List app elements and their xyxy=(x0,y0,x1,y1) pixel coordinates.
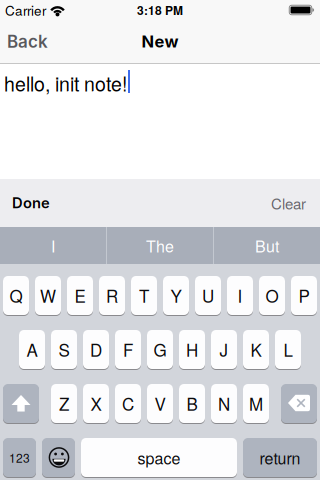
staticText: 123 xyxy=(9,449,30,466)
button[interactable]: Emoji xyxy=(42,438,75,477)
staticText: hello, init note! xyxy=(4,69,127,97)
button[interactable]: M xyxy=(243,384,269,423)
staticText: Carrier xyxy=(5,0,46,20)
button[interactable]: Z xyxy=(51,384,77,423)
staticText: R xyxy=(106,283,118,308)
button[interactable]: G xyxy=(147,330,173,369)
staticText: L xyxy=(283,337,292,362)
button[interactable]: Shift xyxy=(3,384,39,423)
staticText: New xyxy=(141,31,178,51)
staticText: I xyxy=(237,283,242,308)
button[interactable]: X xyxy=(83,384,109,423)
staticText: D xyxy=(90,337,102,362)
staticText: H xyxy=(186,337,198,362)
staticText: return xyxy=(259,446,300,469)
staticText: Q xyxy=(9,283,22,308)
button[interactable]: 123 xyxy=(3,438,36,477)
button[interactable]: P xyxy=(291,276,317,315)
button[interactable]: H xyxy=(179,330,205,369)
staticText: G xyxy=(153,337,166,362)
button[interactable]: W xyxy=(35,276,61,315)
staticText: U xyxy=(202,283,214,308)
staticText: But xyxy=(255,234,279,257)
button[interactable]: K xyxy=(243,330,269,369)
staticText: space xyxy=(137,446,180,469)
staticText: I xyxy=(51,234,55,257)
button[interactable]: space xyxy=(81,438,237,477)
button[interactable]: Q xyxy=(3,276,29,315)
staticText: J xyxy=(219,337,228,362)
button[interactable]: I xyxy=(227,276,253,315)
button[interactable]: F xyxy=(115,330,141,369)
staticText: P xyxy=(298,283,309,308)
staticText: The xyxy=(146,234,174,257)
staticText: 3:18 PM xyxy=(137,1,183,19)
staticText: C xyxy=(122,391,134,416)
button[interactable]: Clear xyxy=(271,192,320,214)
button[interactable]: C xyxy=(115,384,141,423)
button[interactable]: T xyxy=(131,276,157,315)
button[interactable]: U xyxy=(195,276,221,315)
staticText: W xyxy=(40,283,56,308)
button[interactable]: O xyxy=(259,276,285,315)
staticText: F xyxy=(123,337,133,362)
staticText: Z xyxy=(59,391,69,416)
button[interactable]: E xyxy=(67,276,93,315)
button[interactable]: Done xyxy=(0,194,50,212)
button[interactable]: Delete xyxy=(281,384,317,423)
staticText: Back xyxy=(7,31,48,52)
staticText: Done xyxy=(12,194,50,212)
button[interactable]: Back xyxy=(0,31,48,52)
staticText: S xyxy=(58,337,69,362)
staticText: K xyxy=(250,337,261,362)
button[interactable]: R xyxy=(99,276,125,315)
button[interactable]: J xyxy=(211,330,237,369)
staticText: N xyxy=(218,391,230,416)
button[interactable]: The xyxy=(107,227,213,264)
button[interactable]: But xyxy=(214,227,320,264)
button[interactable]: I xyxy=(0,227,106,264)
staticText: M xyxy=(249,391,263,416)
staticText: E xyxy=(74,283,85,308)
staticText: B xyxy=(186,391,197,416)
button[interactable]: Y xyxy=(163,276,189,315)
staticText: Clear xyxy=(271,192,306,214)
staticText: O xyxy=(265,283,278,308)
button[interactable]: N xyxy=(211,384,237,423)
staticText: X xyxy=(90,391,101,416)
staticText: T xyxy=(139,283,149,308)
button[interactable]: return xyxy=(243,438,317,477)
staticText: A xyxy=(26,337,37,362)
button[interactable]: V xyxy=(147,384,173,423)
button[interactable]: S xyxy=(51,330,77,369)
button[interactable]: L xyxy=(275,330,301,369)
staticText: Y xyxy=(170,283,181,308)
button[interactable]: A xyxy=(19,330,45,369)
button[interactable]: D xyxy=(83,330,109,369)
staticText: V xyxy=(154,391,165,416)
button[interactable]: B xyxy=(179,384,205,423)
